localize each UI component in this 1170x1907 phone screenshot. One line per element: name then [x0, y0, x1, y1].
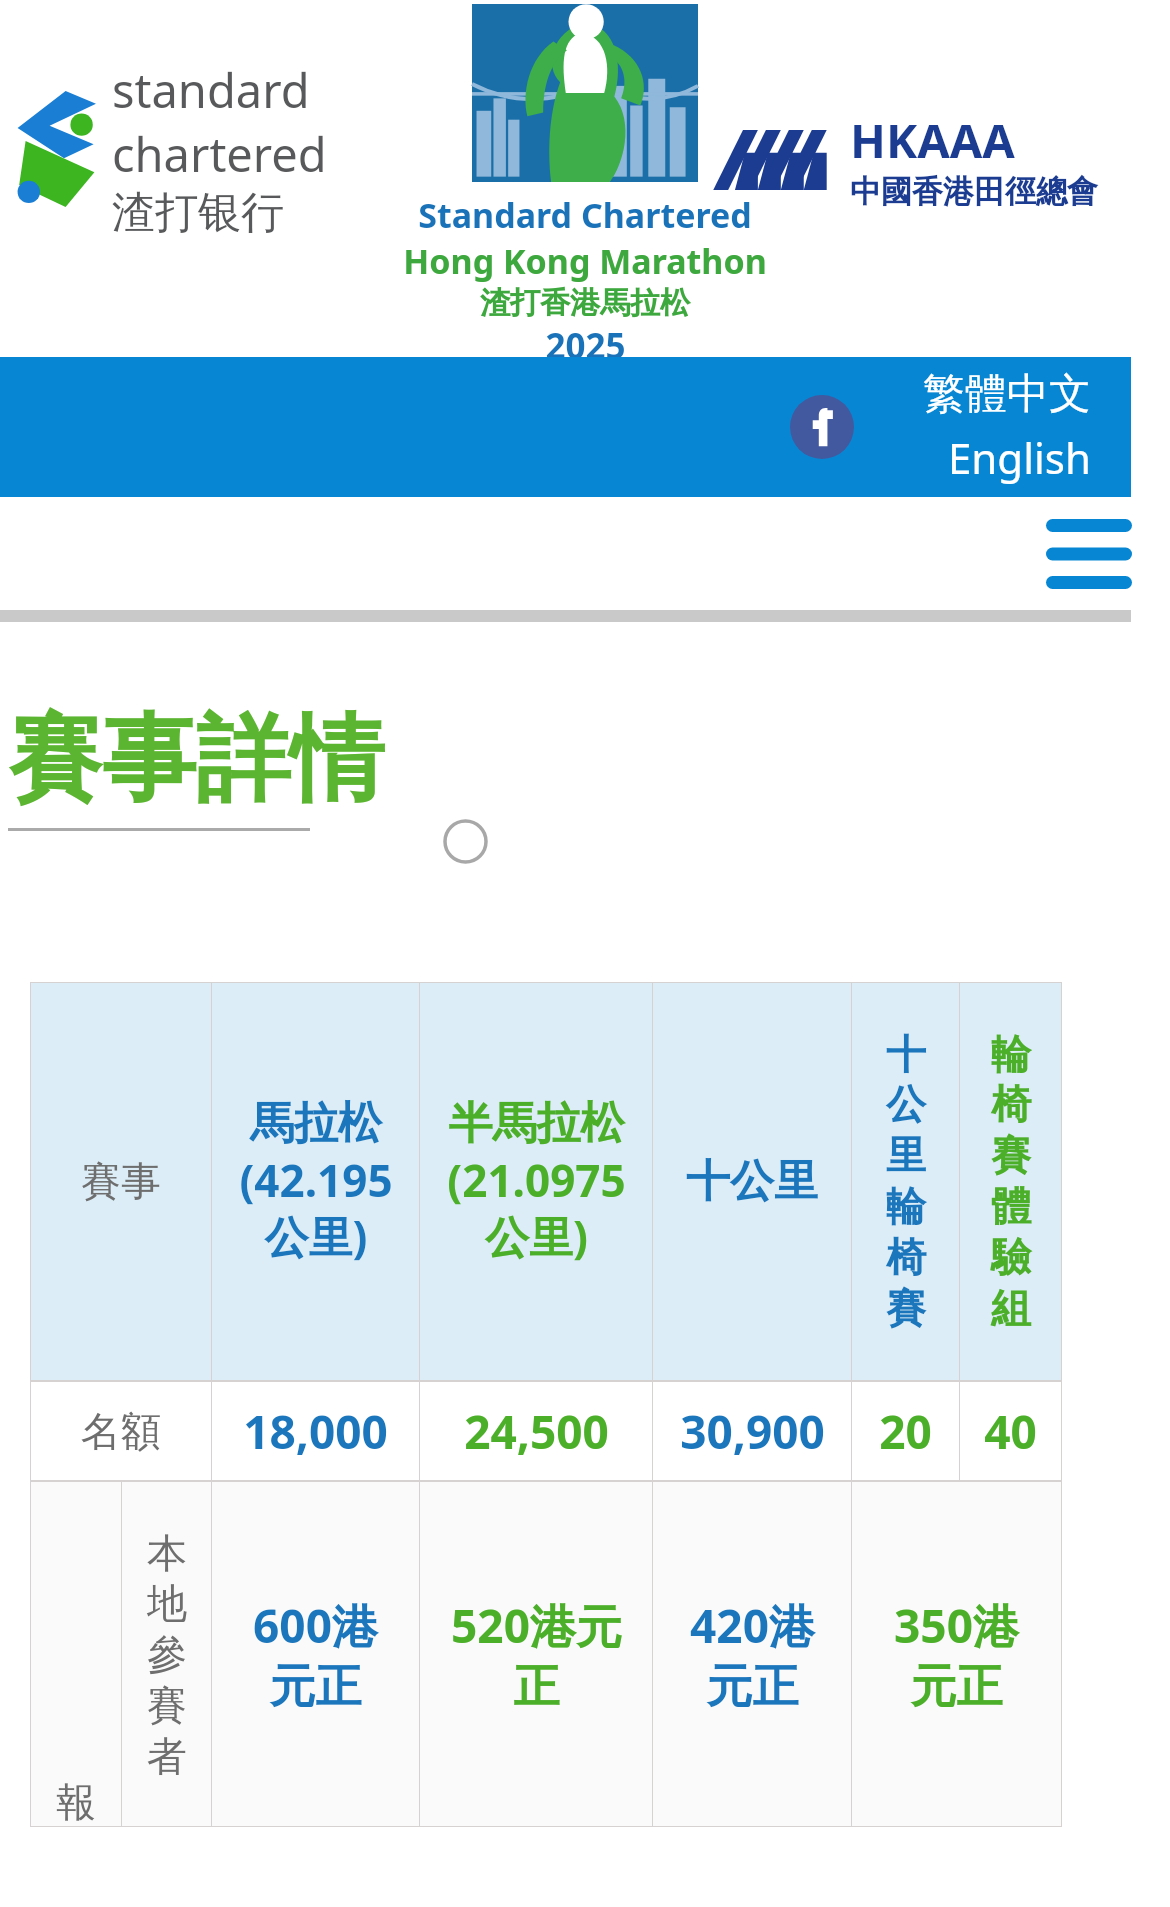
staticText: English: [948, 429, 1091, 486]
staticText: 600港 元正: [253, 1594, 378, 1716]
staticText: 半馬拉松 (21.0975 公里): [447, 1096, 626, 1266]
staticText: Hong Kong Marathon: [403, 238, 767, 284]
button[interactable]: Menu: [1046, 519, 1132, 589]
staticText: 40: [984, 1400, 1037, 1463]
staticText: 18,000: [243, 1400, 388, 1463]
staticText: 馬拉松 (42.195 公里): [239, 1096, 393, 1266]
staticText: 十公里: [686, 1154, 818, 1209]
staticText: standard: [112, 58, 310, 122]
button[interactable]: 繁體中文: [921, 368, 1093, 421]
staticText: 中國香港田徑總會: [850, 172, 1098, 211]
staticText: 350港 元正: [894, 1594, 1019, 1716]
staticText: 420港 元正: [690, 1594, 815, 1716]
staticText: 報: [56, 1777, 96, 1827]
staticText: Standard Chartered: [418, 192, 752, 238]
staticText: 本 地 參 賽 者: [147, 1528, 187, 1782]
staticText: 520港元 正: [451, 1594, 622, 1716]
staticText: 渣打银行: [112, 186, 284, 240]
staticText: 2025: [545, 322, 626, 357]
staticText: 渣打香港馬拉松: [480, 284, 690, 322]
staticText: HKAAA: [850, 108, 1015, 172]
staticText: 輪 椅 賽 體 驗 組: [991, 1029, 1031, 1334]
button[interactable]: Facebook: [790, 395, 854, 459]
staticText: chartered: [112, 122, 327, 186]
staticText: 十 公 里 輪 椅 賽: [886, 1029, 926, 1334]
staticText: 20: [879, 1400, 932, 1463]
staticText: 賽事: [81, 1156, 161, 1206]
button[interactable]: English: [946, 429, 1093, 486]
staticText: 賽事詳情: [8, 700, 384, 818]
staticText: 30,900: [680, 1400, 825, 1463]
staticText: 繁體中文: [923, 368, 1091, 421]
staticText: 24,500: [464, 1400, 609, 1463]
staticText: 名額: [81, 1406, 161, 1456]
